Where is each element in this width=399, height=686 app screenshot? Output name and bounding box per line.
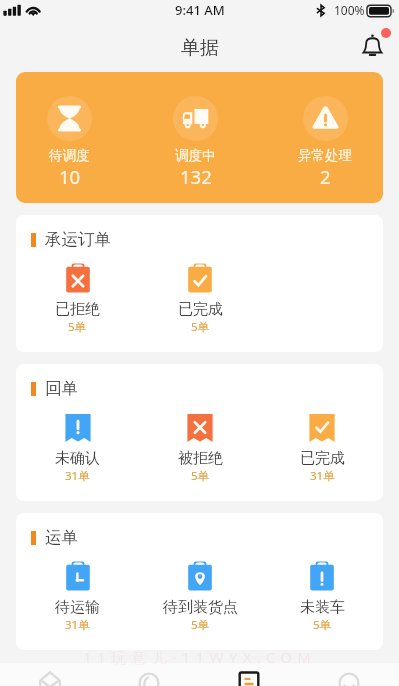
button[interactable]: History bbox=[99, 663, 199, 686]
staticText: 10 bbox=[59, 164, 81, 189]
staticText: 回单 bbox=[45, 378, 78, 399]
staticText: 5单 bbox=[68, 319, 87, 335]
staticText: 被拒绝 bbox=[178, 449, 223, 468]
staticText: 承运订单 bbox=[45, 229, 111, 250]
staticText: 31单 bbox=[65, 468, 90, 484]
staticText: 已拒绝 bbox=[55, 300, 100, 319]
staticText: 未装车 bbox=[300, 598, 345, 617]
staticText: 5单 bbox=[313, 617, 332, 633]
staticText: 待运输 bbox=[55, 598, 100, 617]
button[interactable]: Orders bbox=[199, 663, 299, 686]
button[interactable]: Notifications bbox=[354, 24, 394, 64]
button[interactable]: 已拒绝 bbox=[16, 263, 139, 335]
staticText: 已完成 bbox=[178, 300, 223, 319]
staticText: 132 bbox=[180, 164, 212, 189]
button[interactable]: 已完成 bbox=[261, 412, 383, 484]
staticText: 11玩意儿·11WYX.COM bbox=[83, 647, 317, 667]
button[interactable]: 调度中 bbox=[173, 72, 218, 189]
staticText: 未确认 bbox=[55, 449, 100, 468]
staticText: 待调度 bbox=[49, 147, 90, 164]
button[interactable]: 未确认 bbox=[16, 412, 139, 484]
staticText: 31单 bbox=[65, 617, 90, 633]
button[interactable]: 被拒绝 bbox=[139, 412, 261, 484]
staticText: 调度中 bbox=[175, 147, 216, 164]
staticText: 31单 bbox=[310, 468, 335, 484]
staticText: 9:41 AM bbox=[175, 1, 225, 19]
button[interactable]: Messages bbox=[0, 663, 99, 686]
button[interactable]: 待运输 bbox=[16, 561, 139, 633]
staticText: 单据 bbox=[181, 36, 219, 60]
staticText: 待到装货点 bbox=[163, 598, 238, 617]
button[interactable]: 已完成 bbox=[139, 263, 261, 335]
staticText: 异常处理 bbox=[298, 147, 352, 164]
button[interactable]: 待调度 bbox=[47, 72, 92, 189]
staticText: 已完成 bbox=[300, 449, 345, 468]
button[interactable]: Profile bbox=[299, 663, 399, 686]
staticText: 5单 bbox=[191, 468, 210, 484]
staticText: 5单 bbox=[191, 319, 210, 335]
staticText: 100% bbox=[334, 2, 365, 18]
staticText: 2 bbox=[320, 164, 331, 189]
staticText: 运单 bbox=[45, 527, 78, 548]
button[interactable]: 待到装货点 bbox=[139, 561, 261, 633]
button[interactable]: 异常处理 bbox=[298, 72, 352, 189]
button[interactable]: 未装车 bbox=[261, 561, 383, 633]
staticText: 5单 bbox=[191, 617, 210, 633]
